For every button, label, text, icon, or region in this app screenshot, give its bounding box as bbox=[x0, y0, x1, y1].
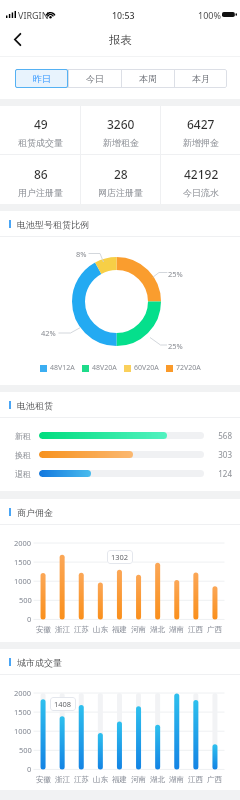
staticText: 安徽 bbox=[36, 625, 51, 634]
staticText: 广西 bbox=[207, 775, 222, 784]
button[interactable]: 退租 bbox=[0, 464, 240, 483]
staticText: 42192 bbox=[184, 166, 219, 182]
staticText: 500 bbox=[19, 745, 32, 755]
staticText: 500 bbox=[19, 595, 32, 605]
staticText: 河南 bbox=[131, 625, 146, 634]
staticText: 湖北 bbox=[150, 775, 165, 784]
button[interactable]: 本周 bbox=[122, 69, 174, 88]
staticText: 124 bbox=[212, 468, 232, 479]
staticText: 城市成交量 bbox=[17, 657, 62, 668]
staticText: 租赁成交量 bbox=[18, 137, 63, 148]
staticText: 浙江 bbox=[55, 625, 70, 634]
staticText: 今日 bbox=[86, 73, 104, 84]
staticText: 退租 bbox=[0, 469, 31, 479]
button[interactable]: 42192 bbox=[161, 155, 240, 204]
staticText: 用户注册量 bbox=[18, 187, 63, 198]
staticText: 电池租赁 bbox=[17, 400, 53, 411]
staticText: 新增租金 bbox=[103, 137, 139, 148]
staticText: 浙江 bbox=[55, 775, 70, 784]
staticText: 湖南 bbox=[169, 625, 184, 634]
staticText: 山东 bbox=[93, 625, 108, 634]
staticText: 25% bbox=[168, 341, 183, 351]
staticText: 1302 bbox=[111, 552, 129, 562]
staticText: 今日流水 bbox=[183, 187, 219, 198]
staticText: 江西 bbox=[188, 775, 203, 784]
staticText: 100% bbox=[198, 9, 221, 21]
button[interactable]: 新租 bbox=[0, 426, 240, 445]
staticText: 江西 bbox=[188, 625, 203, 634]
staticText: 报表 bbox=[109, 33, 132, 47]
button[interactable]: 72V20A bbox=[166, 363, 201, 373]
staticText: 本周 bbox=[139, 73, 157, 84]
button[interactable]: 今日 bbox=[69, 69, 121, 88]
button[interactable]: 48V12A bbox=[40, 363, 75, 373]
staticText: 10:53 bbox=[112, 10, 135, 22]
button[interactable]: 28 bbox=[81, 155, 160, 204]
staticText: 江苏 bbox=[74, 775, 89, 784]
staticText: 6427 bbox=[187, 116, 215, 132]
staticText: 48V12A bbox=[50, 363, 75, 373]
staticText: 1500 bbox=[14, 557, 32, 567]
staticText: 48V20A bbox=[92, 363, 117, 373]
staticText: 2000 bbox=[14, 688, 32, 698]
staticText: 72V20A bbox=[176, 363, 201, 373]
staticText: 福建 bbox=[112, 625, 127, 634]
staticText: 3260 bbox=[107, 116, 135, 132]
staticText: 28 bbox=[114, 166, 128, 182]
staticText: 本月 bbox=[192, 73, 210, 84]
button[interactable]: 6427 bbox=[161, 106, 240, 154]
staticText: 商户佣金 bbox=[17, 507, 53, 518]
staticText: 湖北 bbox=[150, 625, 165, 634]
staticText: 新增押金 bbox=[183, 137, 219, 148]
staticText: 2000 bbox=[14, 538, 32, 548]
staticText: 电池型号租赁比例 bbox=[17, 219, 89, 230]
staticText: 河南 bbox=[131, 775, 146, 784]
staticText: 1500 bbox=[14, 707, 32, 717]
staticText: 网店注册量 bbox=[98, 187, 143, 198]
staticText: 新租 bbox=[0, 431, 31, 441]
staticText: 1000 bbox=[14, 726, 32, 736]
staticText: 昨日 bbox=[33, 73, 51, 84]
button[interactable]: Back bbox=[4, 26, 30, 52]
staticText: 568 bbox=[212, 430, 232, 441]
staticText: 25% bbox=[168, 269, 183, 279]
button[interactable]: 换租 bbox=[0, 445, 240, 464]
button[interactable]: 48V20A bbox=[82, 363, 117, 373]
staticText: 福建 bbox=[112, 775, 127, 784]
staticText: 换租 bbox=[0, 450, 31, 460]
staticText: 0 bbox=[27, 764, 32, 774]
staticText: VIRGIN bbox=[18, 9, 49, 21]
staticText: 1408 bbox=[54, 699, 72, 709]
button[interactable]: 86 bbox=[0, 155, 80, 204]
staticText: 安徽 bbox=[36, 775, 51, 784]
staticText: 1000 bbox=[14, 576, 32, 586]
staticText: 60V20A bbox=[134, 363, 159, 373]
button[interactable]: 60V20A bbox=[124, 363, 159, 373]
staticText: 86 bbox=[34, 166, 48, 182]
button[interactable]: 3260 bbox=[81, 106, 160, 154]
button[interactable]: 昨日 bbox=[15, 69, 68, 88]
staticText: 42% bbox=[41, 328, 56, 338]
staticText: 8% bbox=[76, 249, 87, 259]
button[interactable]: 49 bbox=[0, 106, 80, 154]
button[interactable]: 本月 bbox=[175, 69, 227, 88]
staticText: 广西 bbox=[207, 625, 222, 634]
staticText: 山东 bbox=[93, 775, 108, 784]
staticText: 0 bbox=[27, 614, 32, 624]
staticText: 49 bbox=[34, 116, 48, 132]
staticText: 303 bbox=[212, 449, 232, 460]
staticText: 湖南 bbox=[169, 775, 184, 784]
staticText: 江苏 bbox=[74, 625, 89, 634]
